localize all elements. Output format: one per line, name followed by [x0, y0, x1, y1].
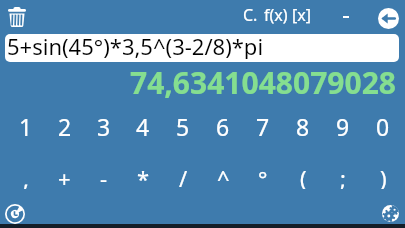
- staticText: 6: [216, 111, 230, 137]
- button[interactable]: 8: [283, 111, 323, 137]
- button[interactable]: 3: [84, 111, 123, 137]
- button[interactable]: [x]: [292, 4, 311, 26]
- button[interactable]: 0: [363, 111, 403, 137]
- button[interactable]: 9: [323, 111, 363, 137]
- button[interactable]: /: [163, 163, 203, 189]
- button[interactable]: ,: [6, 163, 45, 189]
- staticText: 8: [296, 111, 310, 137]
- button[interactable]: +: [45, 163, 84, 189]
- staticText: ^: [217, 163, 230, 189]
- staticText: +: [58, 163, 71, 189]
- staticText: 9: [336, 111, 350, 137]
- button[interactable]: f(x): [264, 4, 288, 26]
- button[interactable]: -: [84, 163, 123, 189]
- staticText: 0: [376, 111, 390, 137]
- button[interactable]: 5: [163, 111, 203, 137]
- staticText: *: [137, 163, 150, 189]
- staticText: 4: [136, 111, 150, 137]
- staticText: 5+sin(45°)*3,5^(3-2/8)*pi: [7, 34, 264, 59]
- staticText: 1: [19, 111, 33, 137]
- button[interactable]: [8, 7, 26, 27]
- staticText: (: [300, 163, 307, 189]
- staticText: 3: [97, 111, 111, 137]
- staticText: ,: [23, 163, 29, 189]
- button[interactable]: C.: [243, 4, 258, 26]
- button[interactable]: ;: [323, 163, 363, 189]
- button[interactable]: 5+sin(45°)*3,5^(3-2/8)*pi: [5, 34, 399, 62]
- button[interactable]: [5, 204, 25, 224]
- button[interactable]: [378, 8, 399, 29]
- staticText: 5: [176, 111, 190, 137]
- staticText: ): [380, 163, 387, 189]
- button[interactable]: ^: [203, 163, 243, 189]
- button[interactable]: 4: [123, 111, 163, 137]
- staticText: ;: [340, 163, 346, 189]
- button[interactable]: *: [123, 163, 163, 189]
- button[interactable]: 7: [243, 111, 283, 137]
- button[interactable]: 1: [6, 111, 45, 137]
- staticText: 7: [256, 111, 270, 137]
- staticText: 2: [58, 111, 72, 137]
- button[interactable]: 6: [203, 111, 243, 137]
- staticText: /: [179, 163, 188, 189]
- button[interactable]: °: [243, 163, 283, 189]
- button[interactable]: ): [363, 163, 403, 189]
- staticText: -: [100, 163, 108, 189]
- staticText: 74,6341048079028: [130, 62, 396, 103]
- staticText: °: [258, 163, 268, 189]
- button[interactable]: (: [283, 163, 323, 189]
- button[interactable]: 2: [45, 111, 84, 137]
- button[interactable]: [382, 205, 399, 222]
